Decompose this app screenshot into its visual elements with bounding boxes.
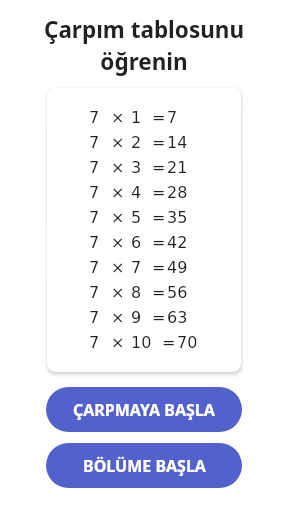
- staticText: 7: [131, 258, 142, 277]
- staticText: 7: [167, 108, 178, 127]
- staticText: =: [152, 108, 166, 127]
- staticText: =: [162, 333, 176, 352]
- staticText: ×: [111, 233, 125, 252]
- staticText: ×: [111, 208, 125, 227]
- staticText: 49: [167, 258, 188, 277]
- staticText: 21: [167, 158, 188, 177]
- staticText: ÇARPMAYA BAŞLA: [73, 399, 215, 421]
- staticText: =: [152, 258, 166, 277]
- staticText: =: [152, 308, 166, 327]
- staticText: BÖLÜME BAŞLA: [83, 455, 206, 477]
- staticText: ×: [111, 258, 125, 277]
- staticText: 7: [89, 233, 100, 252]
- staticText: ×: [111, 183, 125, 202]
- staticText: 35: [167, 208, 188, 227]
- staticText: 70: [177, 333, 198, 352]
- staticText: ×: [111, 108, 125, 127]
- staticText: 7: [89, 308, 100, 327]
- staticText: 7: [89, 283, 100, 302]
- staticText: 63: [167, 308, 188, 327]
- staticText: 7: [89, 158, 100, 177]
- staticText: =: [152, 233, 166, 252]
- staticText: 7: [89, 333, 100, 352]
- staticText: 7: [89, 183, 100, 202]
- staticText: 28: [167, 183, 188, 202]
- button[interactable]: ÇARPMAYA BAŞLA: [46, 387, 242, 432]
- staticText: 5: [131, 208, 142, 227]
- staticText: 6: [131, 233, 142, 252]
- staticText: ×: [111, 133, 125, 152]
- staticText: 2: [131, 133, 142, 152]
- staticText: ×: [111, 308, 125, 327]
- staticText: 1: [131, 108, 142, 127]
- staticText: 8: [131, 283, 142, 302]
- staticText: =: [152, 158, 166, 177]
- staticText: =: [152, 208, 166, 227]
- staticText: 9: [131, 308, 142, 327]
- staticText: ×: [111, 333, 125, 352]
- staticText: Çarpım tablosunu öğrenin: [16, 14, 272, 76]
- staticText: 10: [131, 333, 152, 352]
- staticText: 14: [167, 133, 188, 152]
- staticText: 3: [131, 158, 142, 177]
- staticText: =: [152, 133, 166, 152]
- staticText: 7: [89, 258, 100, 277]
- staticText: 42: [167, 233, 188, 252]
- staticText: 4: [131, 183, 142, 202]
- staticText: =: [152, 283, 166, 302]
- staticText: ×: [111, 158, 125, 177]
- staticText: =: [152, 183, 166, 202]
- staticText: ×: [111, 283, 125, 302]
- staticText: 7: [89, 133, 100, 152]
- button[interactable]: BÖLÜME BAŞLA: [46, 443, 242, 488]
- staticText: 7: [89, 208, 100, 227]
- staticText: 56: [167, 283, 188, 302]
- staticText: 7: [89, 108, 100, 127]
